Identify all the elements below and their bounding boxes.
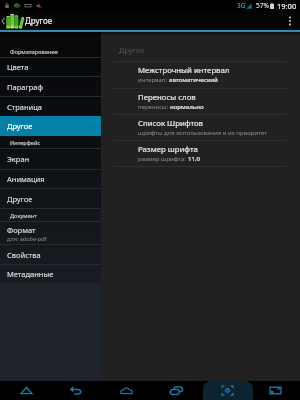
staticText: Межстрочный интервал bbox=[138, 65, 230, 76]
staticText: 57% bbox=[256, 1, 269, 10]
staticText: нормально bbox=[170, 103, 204, 111]
button[interactable]: Список Шрифтов bbox=[101, 115, 300, 140]
button[interactable]: Screenshot bbox=[258, 381, 292, 400]
staticText: 3G bbox=[237, 1, 246, 10]
staticText: Другое bbox=[7, 194, 33, 204]
staticText: Метаданные bbox=[7, 269, 54, 279]
button[interactable]: Recent apps bbox=[159, 381, 193, 400]
staticText: Экран bbox=[7, 154, 30, 164]
staticText: Другое bbox=[7, 121, 33, 131]
staticText: Другое bbox=[25, 15, 53, 26]
staticText: Другое bbox=[119, 45, 145, 55]
button[interactable]: Межстрочный интервал bbox=[101, 62, 300, 88]
button[interactable]: Размер шрифта bbox=[101, 141, 300, 166]
button[interactable]: Другое bbox=[0, 189, 101, 208]
button[interactable]: Экран bbox=[0, 149, 101, 169]
button[interactable]: More options bbox=[280, 11, 300, 30]
button[interactable]: Navigate up bbox=[0, 11, 57, 30]
staticText: Формат bbox=[7, 225, 36, 235]
button[interactable]: Home bbox=[109, 381, 143, 400]
staticText: Документ bbox=[10, 212, 37, 219]
staticText: Страница bbox=[7, 102, 43, 112]
button[interactable]: Цвета bbox=[0, 58, 101, 76]
staticText: Цвета bbox=[7, 62, 29, 72]
staticText: размер шрифта: bbox=[138, 155, 188, 163]
button[interactable]: Формат bbox=[0, 222, 101, 244]
button[interactable]: Анимация bbox=[0, 170, 101, 188]
staticText: Размер шрифта bbox=[138, 144, 198, 155]
button[interactable]: Страница bbox=[0, 97, 101, 116]
button[interactable]: Свойства bbox=[0, 245, 101, 264]
button[interactable]: Full screen bbox=[210, 381, 244, 400]
staticText: Анимация bbox=[7, 174, 45, 184]
staticText: Свойства bbox=[7, 250, 41, 260]
staticText: Переносы слов bbox=[138, 92, 196, 103]
staticText: Список Шрифтов bbox=[138, 118, 204, 129]
staticText: интервал: bbox=[138, 76, 169, 84]
button[interactable]: Back bbox=[58, 381, 92, 400]
staticText: 19:00 bbox=[277, 1, 297, 11]
staticText: Интерфейс bbox=[10, 139, 41, 146]
staticText: переносы: bbox=[138, 103, 170, 111]
staticText: 11,0 bbox=[188, 155, 200, 163]
staticText: автоматический bbox=[169, 76, 218, 84]
button[interactable]: Menu bbox=[9, 381, 43, 400]
button[interactable]: Переносы слов bbox=[101, 89, 300, 114]
button[interactable]: Другое bbox=[0, 116, 101, 136]
staticText: Форматирование bbox=[10, 48, 58, 55]
staticText: шрифты для использования и их приоритет bbox=[138, 129, 268, 137]
button[interactable]: Метаданные bbox=[0, 265, 101, 283]
button[interactable]: Параграф bbox=[0, 77, 101, 96]
staticText: для: adobe-pdf bbox=[7, 235, 47, 242]
staticText: Параграф bbox=[7, 82, 43, 92]
